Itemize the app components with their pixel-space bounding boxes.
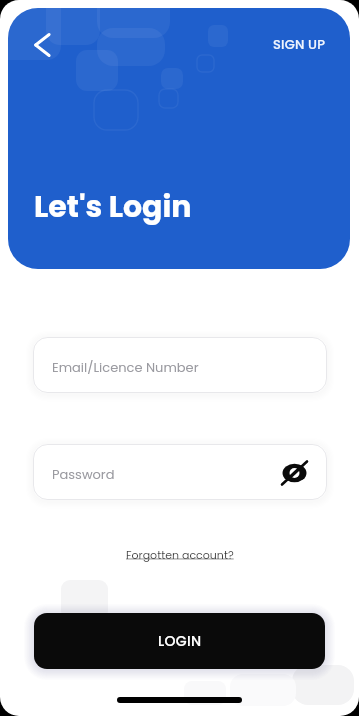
staticText: LOGIN: [158, 631, 202, 651]
button[interactable]: SIGN UP: [269, 29, 330, 59]
staticText: SIGN UP: [273, 35, 326, 53]
button[interactable]: Email/Licence Number: [33, 337, 327, 393]
button[interactable]: Back: [22, 23, 64, 65]
staticText: Forgotten account?: [126, 547, 234, 562]
button[interactable]: Forgotten account?: [120, 544, 240, 565]
staticText: Password: [52, 465, 115, 483]
button[interactable]: Show password: [279, 456, 311, 488]
staticText: Let's Login: [34, 186, 192, 228]
button[interactable]: LOGIN: [34, 613, 325, 669]
staticText: Email/Licence Number: [52, 358, 199, 376]
button[interactable]: Password: [33, 444, 327, 500]
